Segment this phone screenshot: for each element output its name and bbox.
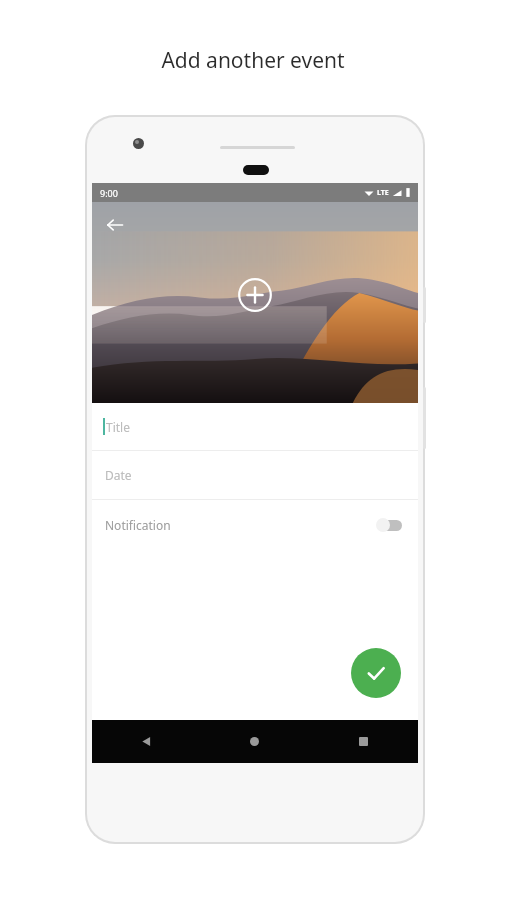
staticText: Date <box>105 467 132 483</box>
staticText: Add another event <box>161 46 345 75</box>
button[interactable]: Date <box>92 451 418 499</box>
button[interactable]: Back <box>98 208 132 242</box>
button[interactable]: Title <box>92 403 418 450</box>
staticText: 9:00 <box>100 187 118 199</box>
button[interactable]: Add photo <box>232 272 278 318</box>
staticText: Notification <box>105 517 171 533</box>
button[interactable]: Recents <box>309 720 418 763</box>
staticText: Title <box>106 419 130 435</box>
staticText: LTE <box>377 188 389 198</box>
button[interactable]: Notification <box>92 500 418 550</box>
button[interactable]: Back <box>92 720 200 763</box>
button[interactable]: Home <box>200 720 309 763</box>
button[interactable]: Save event <box>351 648 401 698</box>
